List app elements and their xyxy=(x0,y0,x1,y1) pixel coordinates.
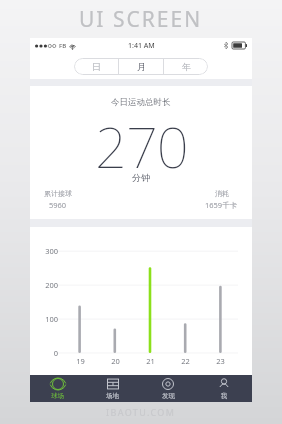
other: 我 xyxy=(218,378,230,390)
staticText: 1:41 AM xyxy=(128,41,155,51)
staticText: 19 xyxy=(76,356,85,366)
button[interactable]: 年 xyxy=(164,58,208,75)
staticText: 270 xyxy=(95,108,188,172)
staticText: 1659千卡 xyxy=(205,200,238,210)
staticText: 0 xyxy=(53,348,58,358)
button[interactable]: 发现 xyxy=(140,375,196,402)
staticText: 场地 xyxy=(106,392,119,400)
staticText: FB xyxy=(59,42,67,50)
staticText: 我 xyxy=(221,392,228,400)
staticText: 200 xyxy=(45,280,58,290)
button[interactable]: 日 xyxy=(74,58,118,75)
other: 球场 xyxy=(52,378,64,390)
button[interactable]: 球场 xyxy=(30,375,85,402)
other: 发现 xyxy=(162,378,174,390)
staticText: 300 xyxy=(45,246,58,256)
staticText: IBAOTU.COM xyxy=(106,406,176,418)
button[interactable]: 场地 xyxy=(85,375,140,402)
staticText: 分钟 xyxy=(132,172,150,183)
staticText: 20 xyxy=(111,356,120,366)
staticText: 发现 xyxy=(162,392,175,400)
staticText: 22 xyxy=(181,356,190,366)
staticText: 累计接球 xyxy=(44,189,72,198)
staticText: 消耗 xyxy=(215,189,229,198)
staticText: 年 xyxy=(182,61,191,72)
staticText: 今日运动总时长 xyxy=(111,97,171,108)
staticText: 日 xyxy=(92,61,101,72)
staticText: 100 xyxy=(45,314,58,324)
staticText: 月 xyxy=(137,61,146,72)
staticText: 5960 xyxy=(49,200,67,210)
button[interactable]: 我 xyxy=(196,375,252,402)
staticText: 球场 xyxy=(51,392,64,400)
staticText: 23 xyxy=(216,356,225,366)
other: 场地 xyxy=(107,378,119,390)
staticText: UI SCREEN xyxy=(79,5,203,34)
button[interactable]: 月 xyxy=(119,58,163,75)
staticText: 21 xyxy=(146,356,155,366)
